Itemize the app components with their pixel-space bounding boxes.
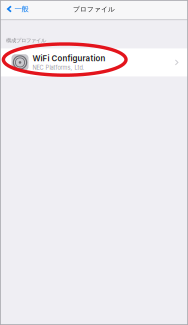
button[interactable]: WiFi Configuration xyxy=(0,48,188,76)
staticText: 構成プロファイル xyxy=(6,37,46,44)
staticText: WiFi Configuration xyxy=(32,54,105,63)
staticText: NEC Platforms, Ltd. xyxy=(32,64,84,71)
staticText: 一般 xyxy=(14,4,28,14)
button[interactable]: 一般 xyxy=(0,0,34,19)
staticText: プロファイル xyxy=(73,5,115,13)
